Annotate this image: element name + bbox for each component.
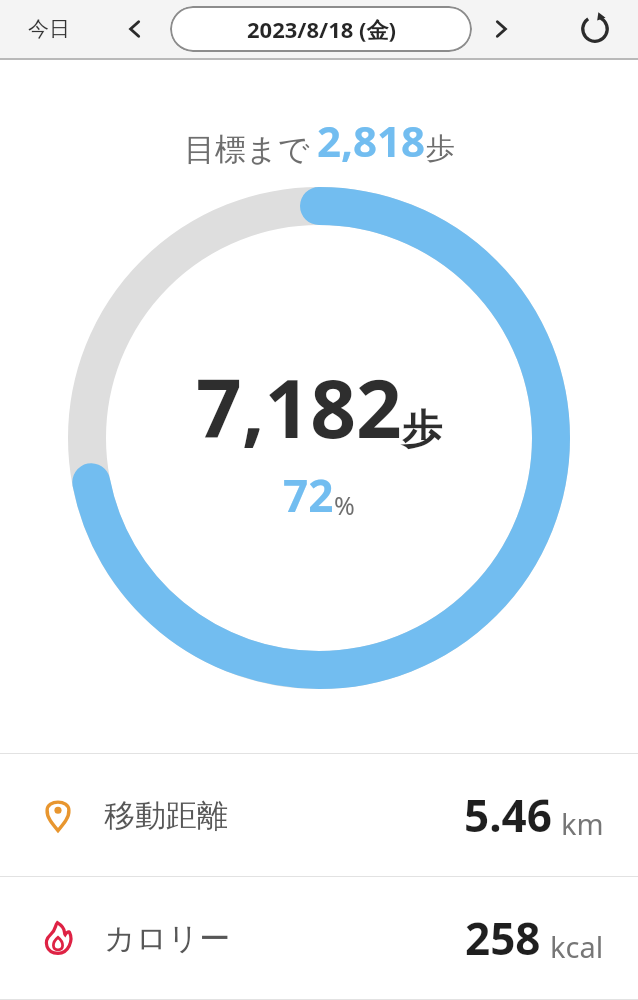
staticText: 歩 <box>402 404 442 454</box>
staticText: 5.46 <box>464 785 552 845</box>
button[interactable]: 2023/8/18 (金) <box>170 6 472 52</box>
button[interactable]: Refresh <box>572 6 618 52</box>
button[interactable]: Next day <box>478 6 524 52</box>
staticText: 歩 <box>426 130 455 167</box>
staticText: 7,182 <box>196 352 402 461</box>
staticText: 258 <box>465 908 541 968</box>
staticText: 目標まで <box>184 130 310 169</box>
button[interactable]: Previous day <box>112 6 158 52</box>
staticText: 72 <box>283 465 334 525</box>
staticText: 2,818 <box>317 112 426 169</box>
button[interactable]: 今日 <box>22 10 76 48</box>
staticText: 今日 <box>28 16 70 42</box>
button[interactable]: カロリー <box>0 877 638 999</box>
staticText: 2023/8/18 (金) <box>247 14 396 44</box>
staticText: 移動距離 <box>104 796 228 835</box>
staticText: kcal <box>550 927 604 966</box>
staticText: % <box>334 488 355 522</box>
button[interactable]: 移動距離 <box>0 754 638 876</box>
staticText: km <box>561 804 604 843</box>
staticText: カロリー <box>104 919 231 958</box>
